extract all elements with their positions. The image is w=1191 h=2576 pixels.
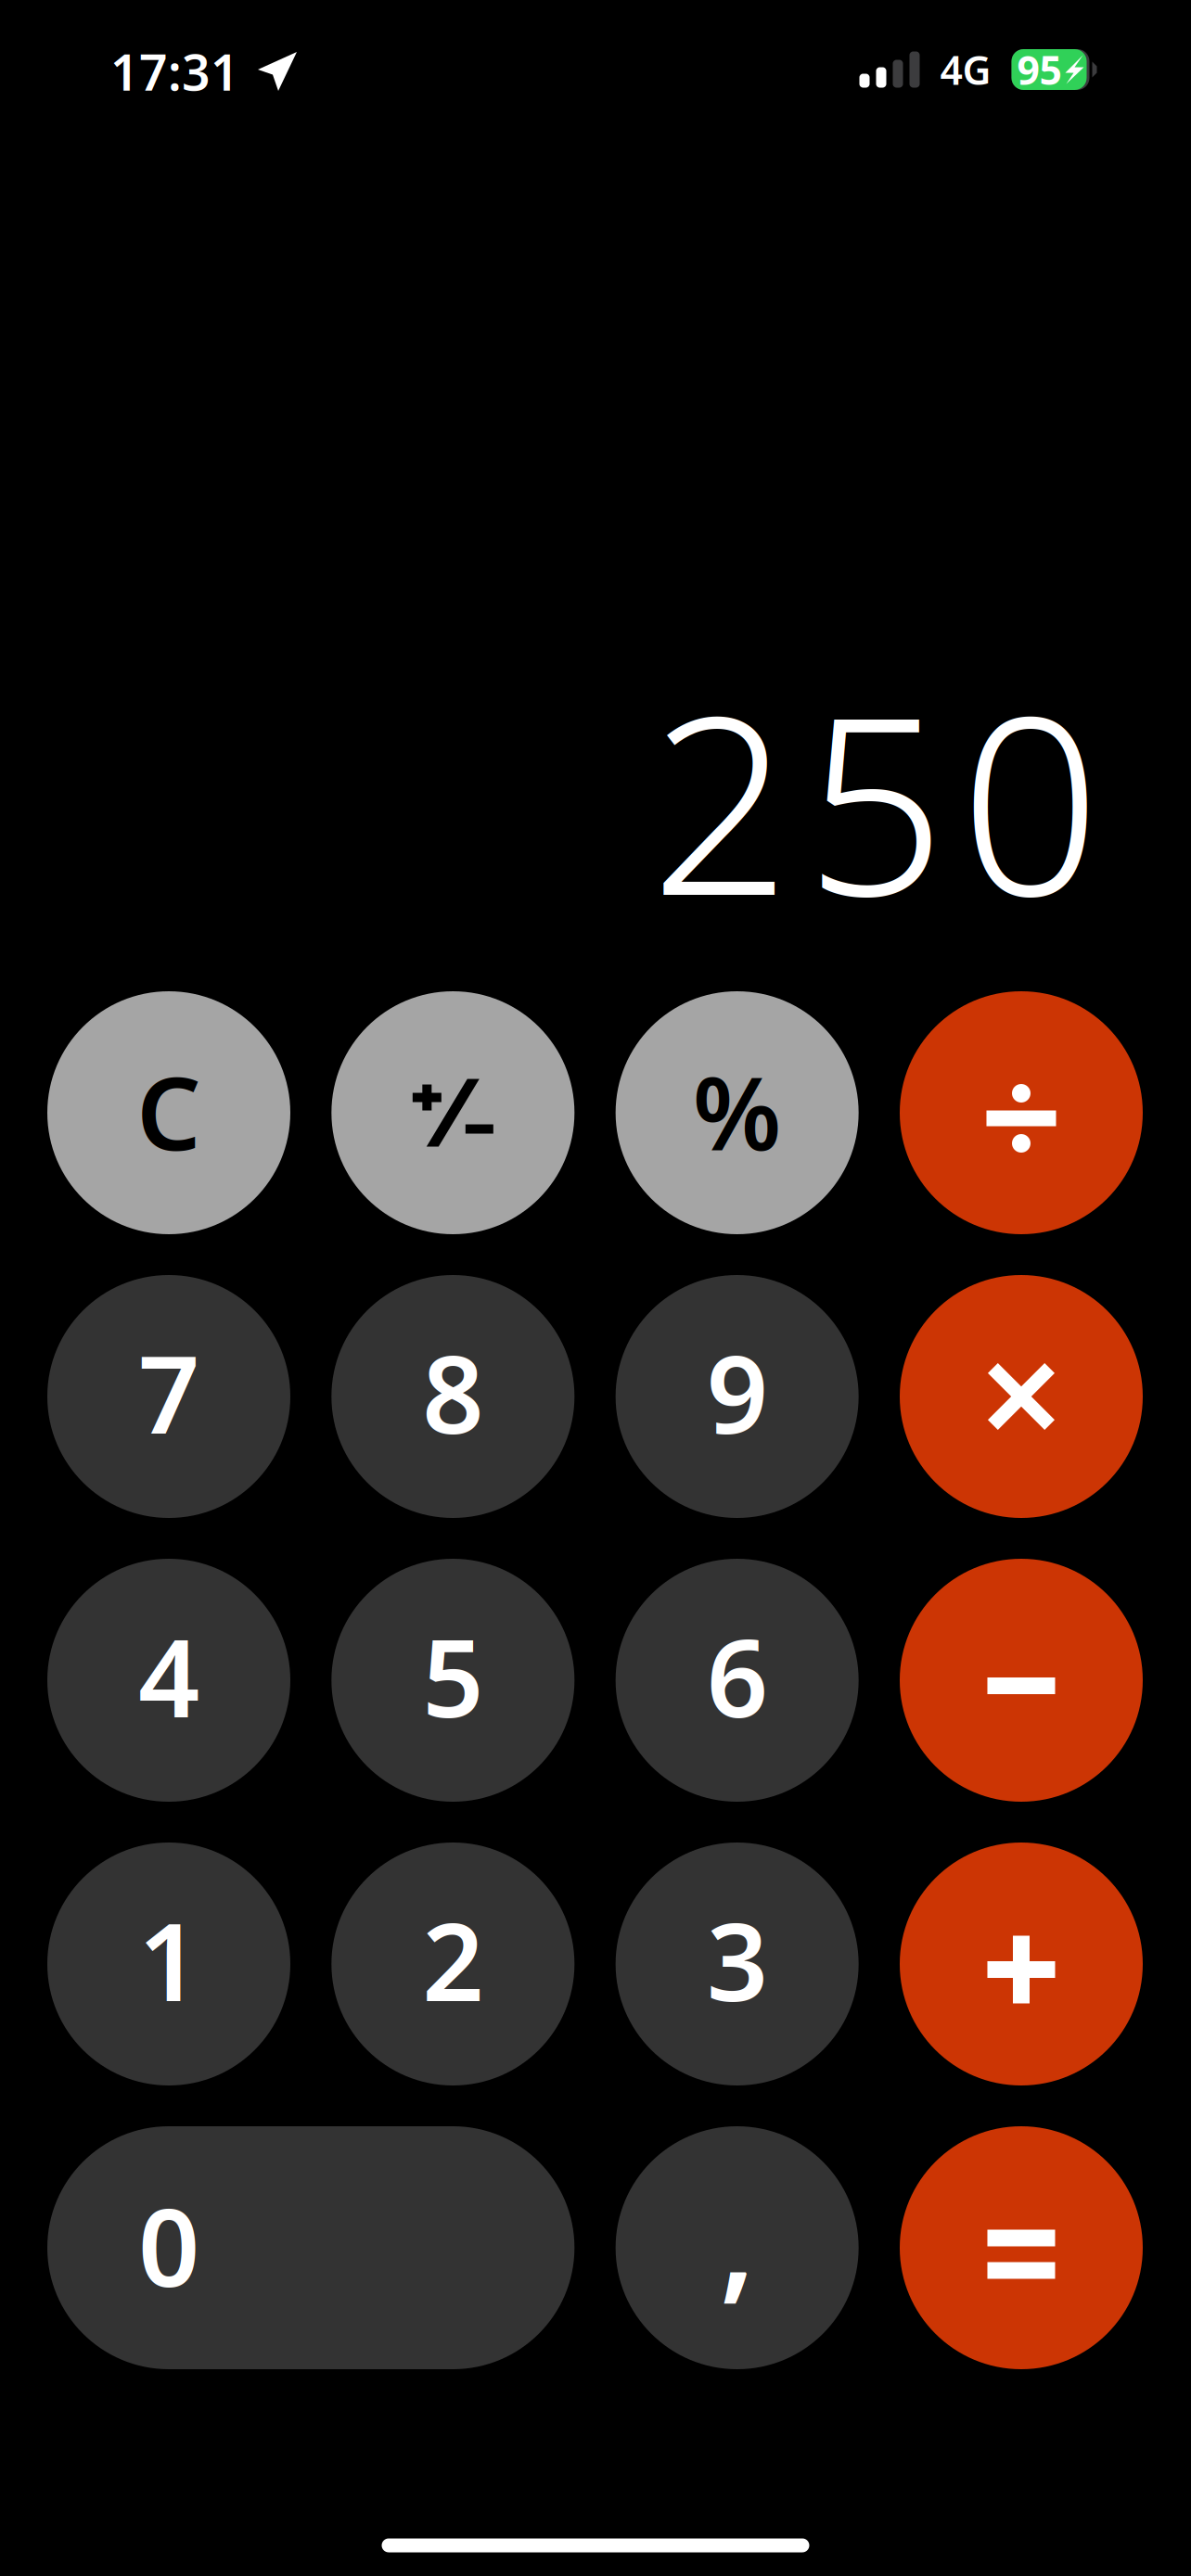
button[interactable]: 7 [47, 1275, 290, 1518]
button[interactable]: 9 [616, 1275, 859, 1518]
staticText: 5 [422, 1604, 484, 1747]
button[interactable]: C [47, 991, 290, 1234]
staticText: 9 [707, 1320, 768, 1463]
staticText: 2 [422, 1888, 484, 2031]
staticText: , [720, 2153, 755, 2322]
staticText: 3 [707, 1888, 768, 2031]
staticText: 4 [138, 1604, 199, 1747]
button[interactable]: Subtract [900, 1559, 1143, 1802]
button[interactable]: Equals [900, 2126, 1143, 2369]
button[interactable]: 1 [47, 1843, 290, 2085]
staticText: 7 [138, 1320, 199, 1463]
button[interactable]: 8 [331, 1275, 574, 1518]
button[interactable]: Plus Minus [331, 991, 574, 1234]
button[interactable]: Add [900, 1843, 1143, 2085]
staticText: 4G [940, 43, 991, 96]
staticText: 250 [650, 636, 1101, 963]
staticText: % [693, 1044, 782, 1178]
staticText: 1 [138, 1888, 199, 2031]
button[interactable]: % [616, 991, 859, 1234]
staticText: C [136, 1044, 201, 1178]
staticText: 6 [707, 1604, 768, 1747]
staticText: 17:31 [110, 39, 239, 104]
staticText: 0 [138, 2174, 199, 2316]
button[interactable]: 5 [331, 1559, 574, 1802]
button[interactable]: Multiply [900, 1275, 1143, 1518]
button[interactable]: 3 [616, 1843, 859, 2085]
button[interactable]: 6 [616, 1559, 859, 1802]
button[interactable]: , [616, 2126, 859, 2369]
button[interactable]: 2 [331, 1843, 574, 2085]
button[interactable]: Divide [900, 991, 1143, 1234]
staticText: 8 [422, 1320, 484, 1463]
staticText: 95 [1017, 43, 1062, 96]
button[interactable]: 0 [47, 2126, 574, 2369]
button[interactable]: 4 [47, 1559, 290, 1802]
